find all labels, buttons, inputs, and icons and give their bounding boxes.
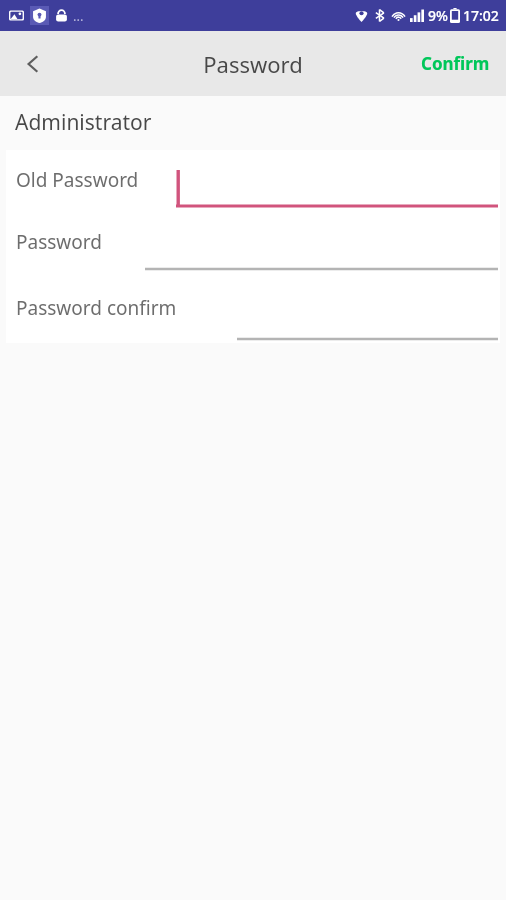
staticText: ... xyxy=(73,7,84,25)
button[interactable]: Back xyxy=(0,31,66,96)
staticText: 9% xyxy=(428,6,448,25)
staticText: Confirm xyxy=(421,52,490,75)
button[interactable]: Confirm xyxy=(405,31,506,96)
staticText: Password xyxy=(203,49,303,79)
button[interactable]: Old Password xyxy=(6,150,500,210)
button[interactable]: Password confirm xyxy=(6,273,500,343)
button[interactable]: Password xyxy=(6,210,500,273)
staticText: 17:02 xyxy=(463,6,499,25)
staticText: Password xyxy=(16,229,102,255)
staticText: Password confirm xyxy=(16,295,177,321)
staticText: Old Password xyxy=(16,167,139,193)
staticText: Administrator xyxy=(15,108,152,137)
